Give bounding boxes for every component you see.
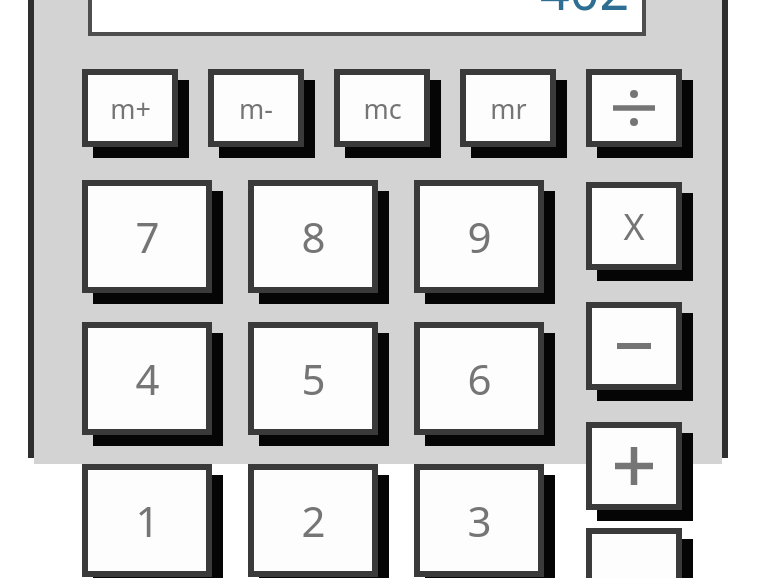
button[interactable]: 6 [414, 322, 555, 446]
button[interactable]: 2 [248, 464, 389, 578]
staticText: mc [363, 90, 402, 127]
staticText: X [623, 202, 645, 251]
staticText: 9 [467, 208, 492, 265]
staticText: 7 [135, 208, 160, 265]
button[interactable]: mc [334, 69, 441, 158]
button[interactable]: m- [208, 69, 315, 158]
button[interactable]: 1 [82, 464, 223, 578]
button[interactable]: m+ [82, 69, 189, 158]
button[interactable]: Minus [586, 302, 693, 401]
button[interactable]: 5 [248, 322, 389, 446]
button[interactable]: Plus [586, 422, 693, 521]
staticText: m- [239, 90, 273, 127]
staticText: 8 [301, 208, 326, 265]
button[interactable]: Divide [586, 69, 693, 158]
button[interactable]: 3 [414, 464, 555, 578]
staticText: 402 [540, 0, 630, 25]
staticText: 5 [301, 350, 326, 407]
button[interactable]: mr [460, 69, 567, 158]
staticText: mr [490, 90, 527, 127]
button[interactable]: 9 [414, 180, 555, 304]
staticText: 4 [135, 350, 160, 407]
staticText: m+ [110, 90, 151, 127]
staticText: 6 [467, 350, 492, 407]
button[interactable]: 7 [82, 180, 223, 304]
button[interactable]: Equals [586, 528, 693, 578]
button[interactable]: 4 [82, 322, 223, 446]
staticText: 1 [135, 492, 160, 549]
staticText: 2 [301, 492, 326, 549]
button[interactable]: Multiply [586, 182, 693, 281]
button[interactable]: 8 [248, 180, 389, 304]
staticText: 3 [467, 492, 492, 549]
